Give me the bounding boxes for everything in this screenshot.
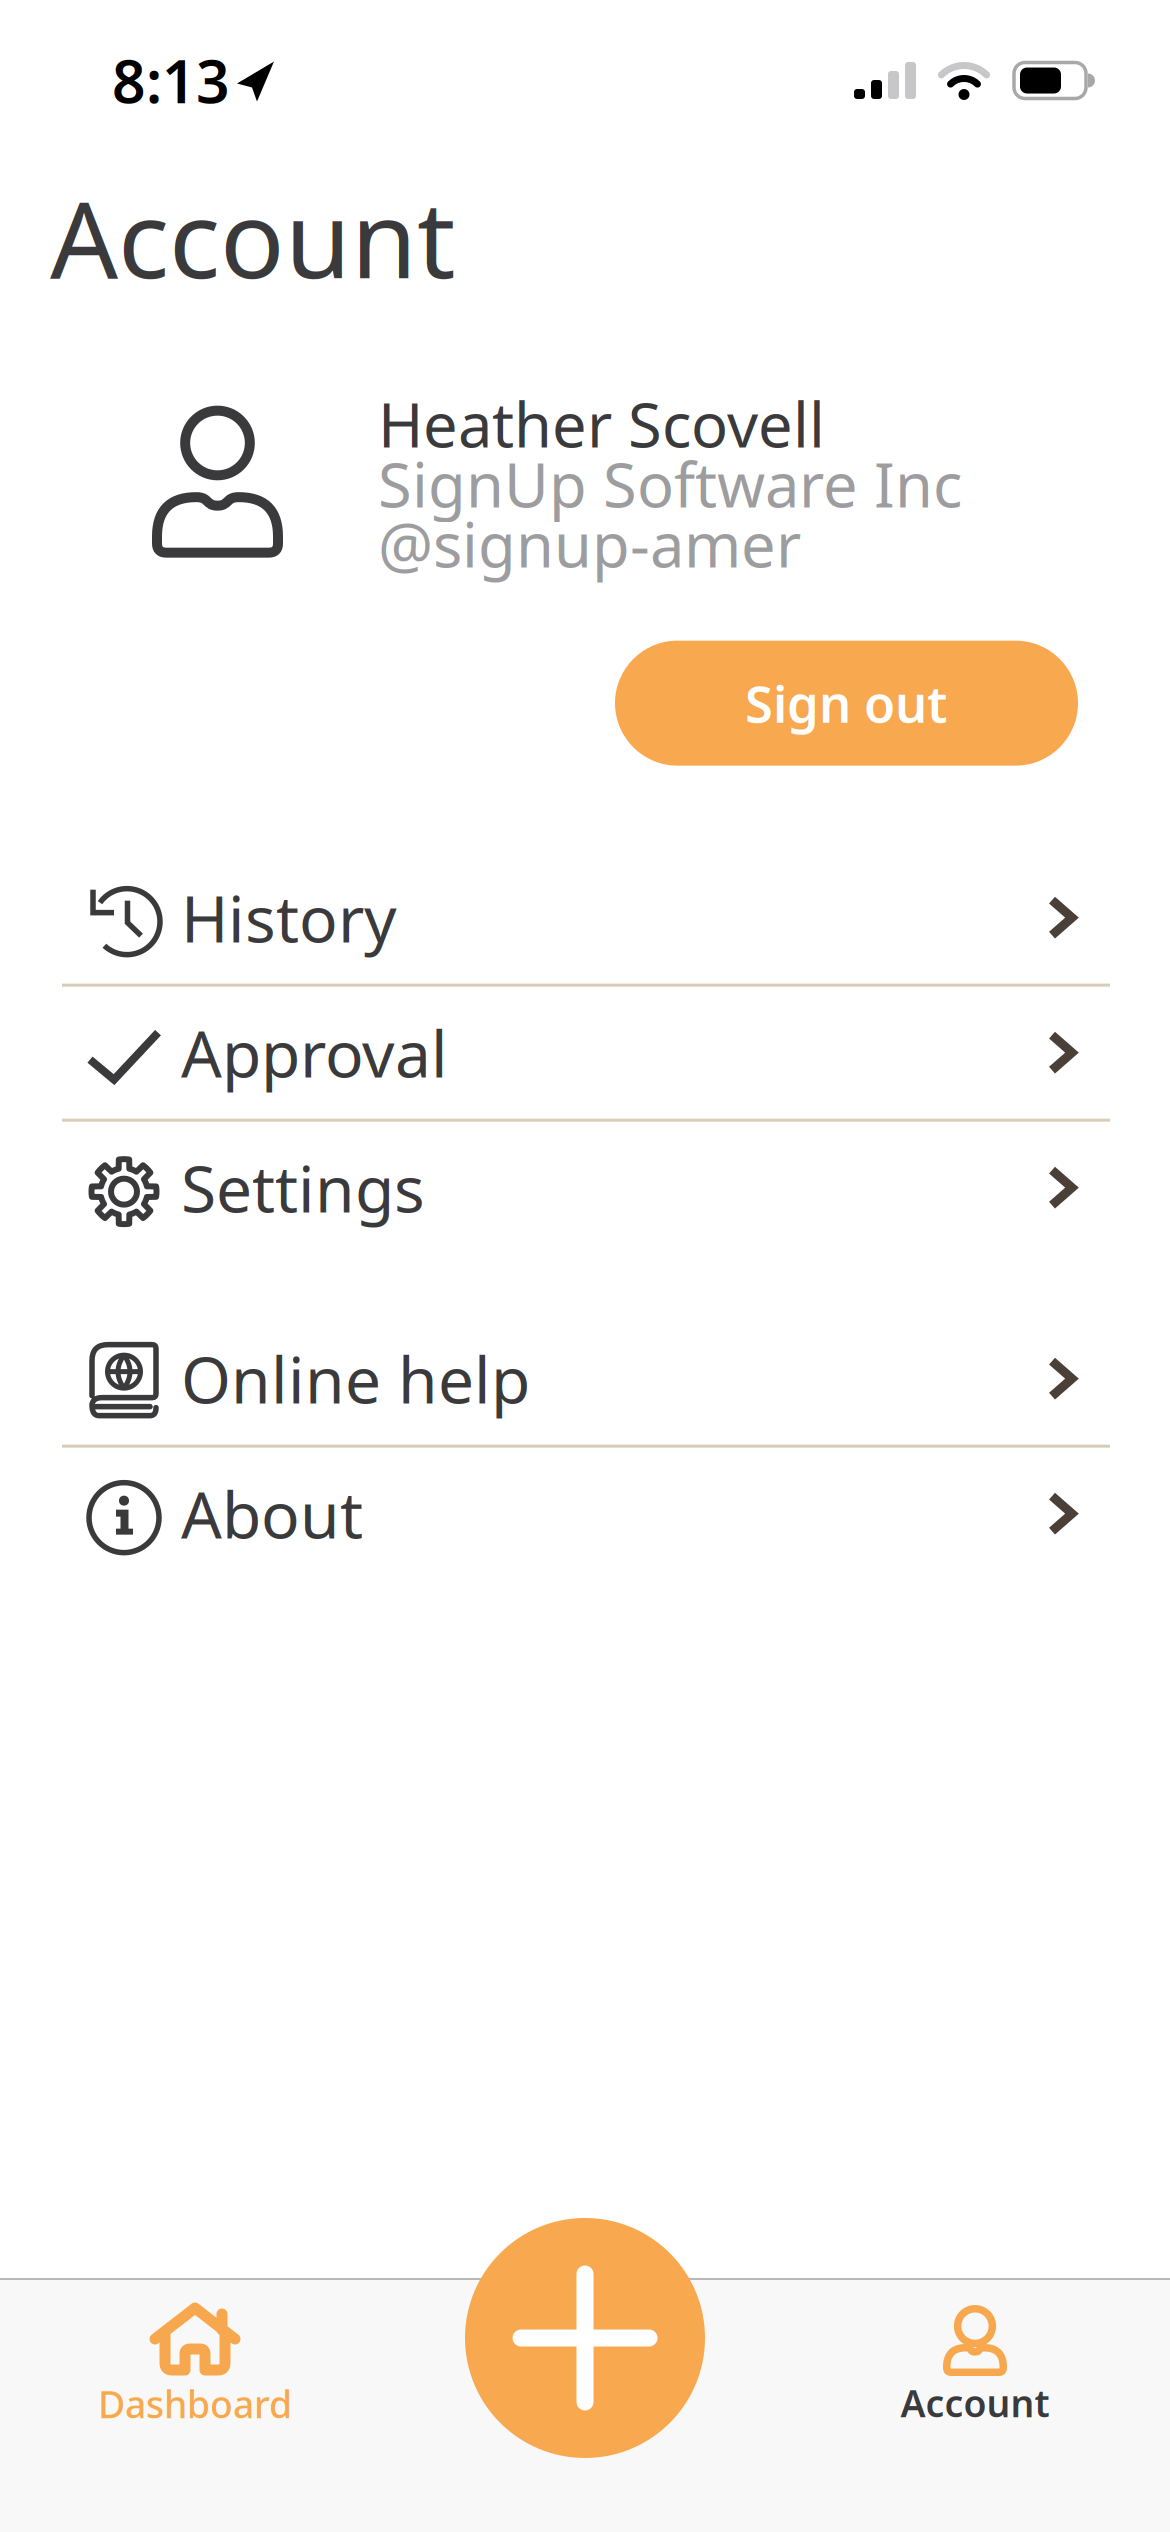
staticText: Account: [900, 2378, 1049, 2428]
staticText: Online help: [181, 1336, 530, 1421]
staticText: Sign out: [745, 669, 948, 737]
button[interactable]: Add: [465, 2218, 705, 2458]
staticText: Approval: [181, 1010, 448, 1095]
button[interactable]: Online help: [0, 1313, 1170, 1445]
staticText: 8:13: [112, 41, 230, 119]
staticText: About: [181, 1471, 363, 1556]
button[interactable]: Settings: [0, 1122, 1170, 1254]
button[interactable]: Account: [780, 2281, 1170, 2428]
staticText: Heather Scovell: [378, 383, 825, 464]
button[interactable]: Approval: [0, 987, 1170, 1119]
staticText: Account: [50, 166, 456, 308]
staticText: Dashboard: [98, 2379, 292, 2429]
staticText: Settings: [181, 1145, 425, 1230]
button[interactable]: Dashboard: [0, 2280, 390, 2429]
staticText: SignUp Software Inc: [378, 443, 962, 524]
staticText: History: [181, 875, 397, 960]
button[interactable]: History: [0, 852, 1170, 984]
button[interactable]: Sign out: [615, 641, 1078, 766]
staticText: @signup-amer: [378, 503, 801, 584]
button[interactable]: About: [0, 1448, 1170, 1580]
